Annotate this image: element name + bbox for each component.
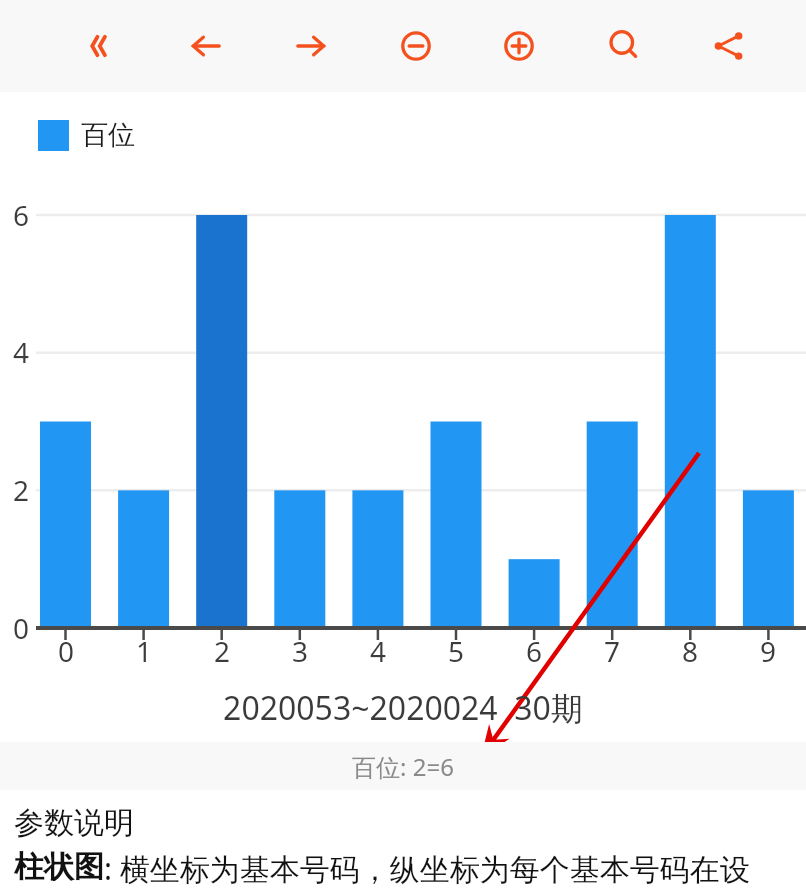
staticText: 4	[370, 632, 387, 670]
staticText: 7	[604, 632, 621, 670]
staticText: 参数说明	[14, 804, 134, 842]
staticText: : 横坐标为基本号码，纵坐标为每个基本号码在设	[104, 848, 750, 889]
button[interactable]: Zoom in	[486, 13, 552, 79]
button[interactable]: Share	[696, 13, 762, 79]
button[interactable]: Zoom out	[383, 13, 449, 79]
staticText: 百位: 2=6	[352, 750, 454, 783]
staticText: 0	[13, 609, 30, 647]
staticText: 8	[682, 632, 699, 670]
button[interactable]: 百位	[38, 118, 135, 152]
staticText: 9	[760, 632, 777, 670]
staticText: 1	[136, 632, 153, 670]
staticText: 百位	[81, 118, 135, 152]
staticText: 6	[526, 632, 543, 670]
button[interactable]: First page	[68, 13, 134, 79]
staticText: 0	[58, 632, 75, 670]
staticText: 柱状图	[14, 848, 104, 886]
button[interactable]: Next	[278, 13, 344, 79]
button[interactable]: Search	[591, 13, 657, 79]
staticText: 5	[448, 632, 465, 670]
staticText: 6	[13, 196, 30, 234]
staticText: 4	[13, 333, 30, 371]
staticText: 2	[13, 471, 30, 509]
button[interactable]: Previous	[173, 13, 239, 79]
staticText: 3	[292, 632, 309, 670]
staticText: 2	[214, 632, 231, 670]
staticText: 2020053~2020024 30期	[223, 686, 583, 730]
